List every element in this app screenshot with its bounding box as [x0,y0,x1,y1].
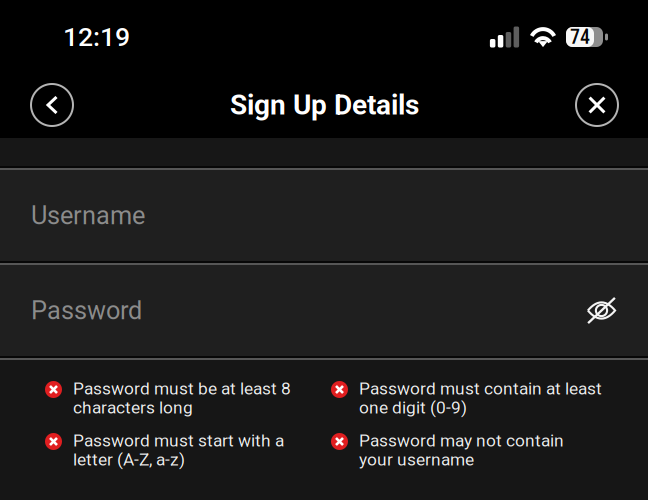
staticText: Username [31,201,145,230]
staticText: Sign Up Details [230,89,419,121]
staticText: Password [31,296,142,325]
button[interactable]: Password [0,265,560,356]
button[interactable]: Close [571,79,623,131]
staticText: 12:19 [63,21,130,53]
staticText: your username [359,449,474,470]
staticText: Password may not contain [359,430,564,451]
staticText: characters long [73,397,193,418]
button[interactable]: Show password [560,265,648,356]
staticText: Password must start with a [73,430,284,451]
staticText: Password must contain at least [359,378,602,399]
staticText: 74 [570,25,590,49]
staticText: Password must be at least 8 [73,378,291,399]
button[interactable]: Username [0,170,648,261]
staticText: letter (A-Z, a-z) [73,449,185,470]
button[interactable]: Back [26,79,78,131]
staticText: one digit (0-9) [359,397,467,418]
